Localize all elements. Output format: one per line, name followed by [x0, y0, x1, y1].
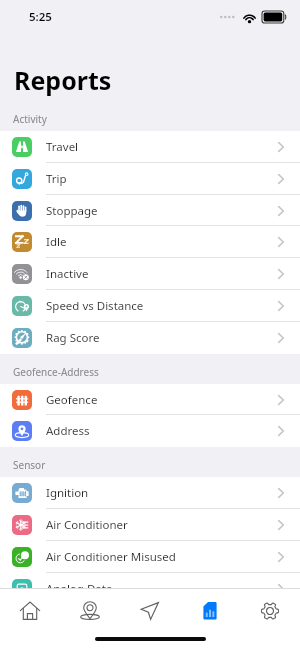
button[interactable]: Air Conditioner — [0, 509, 300, 541]
button[interactable]: Stoppage — [0, 195, 300, 226]
button[interactable]: Speed vs Distance — [0, 290, 300, 322]
staticText: Geofence-Address — [13, 365, 99, 379]
button[interactable]: Analog Data — [0, 573, 300, 604]
staticText: Rag Score — [46, 330, 100, 346]
staticText: Idle — [46, 234, 67, 250]
button[interactable]: Navigate — [120, 589, 180, 632]
button[interactable]: Address — [0, 415, 300, 447]
staticText: Air Conditioner Misused — [46, 549, 176, 565]
staticText: Travel — [46, 139, 79, 155]
button[interactable]: Reports — [180, 589, 240, 632]
staticText: Sensor — [13, 458, 46, 472]
staticText: Inactive — [46, 266, 89, 282]
button[interactable]: Geofence — [0, 384, 300, 415]
button[interactable]: Places — [60, 589, 120, 632]
button[interactable]: Idle — [0, 226, 300, 258]
staticText: Stoppage — [46, 203, 98, 219]
button[interactable]: Settings — [240, 589, 300, 632]
button[interactable]: Trip — [0, 163, 300, 195]
button[interactable]: Air Conditioner Misused — [0, 541, 300, 573]
staticText: Speed vs Distance — [46, 298, 144, 314]
button[interactable]: Inactive — [0, 258, 300, 290]
staticText: 5:25 — [29, 9, 52, 25]
staticText: Activity — [13, 112, 47, 126]
button[interactable]: Home — [0, 589, 60, 632]
staticText: Analog Data — [46, 581, 113, 597]
staticText: Reports — [14, 63, 112, 97]
button[interactable]: Travel — [0, 131, 300, 163]
staticText: Geofence — [46, 392, 98, 408]
staticText: Ignition — [46, 485, 89, 501]
staticText: Trip — [46, 171, 67, 187]
button[interactable]: Ignition — [0, 477, 300, 509]
button[interactable]: Rag Score — [0, 322, 300, 354]
staticText: Air Conditioner — [46, 517, 128, 533]
staticText: Address — [46, 423, 90, 439]
